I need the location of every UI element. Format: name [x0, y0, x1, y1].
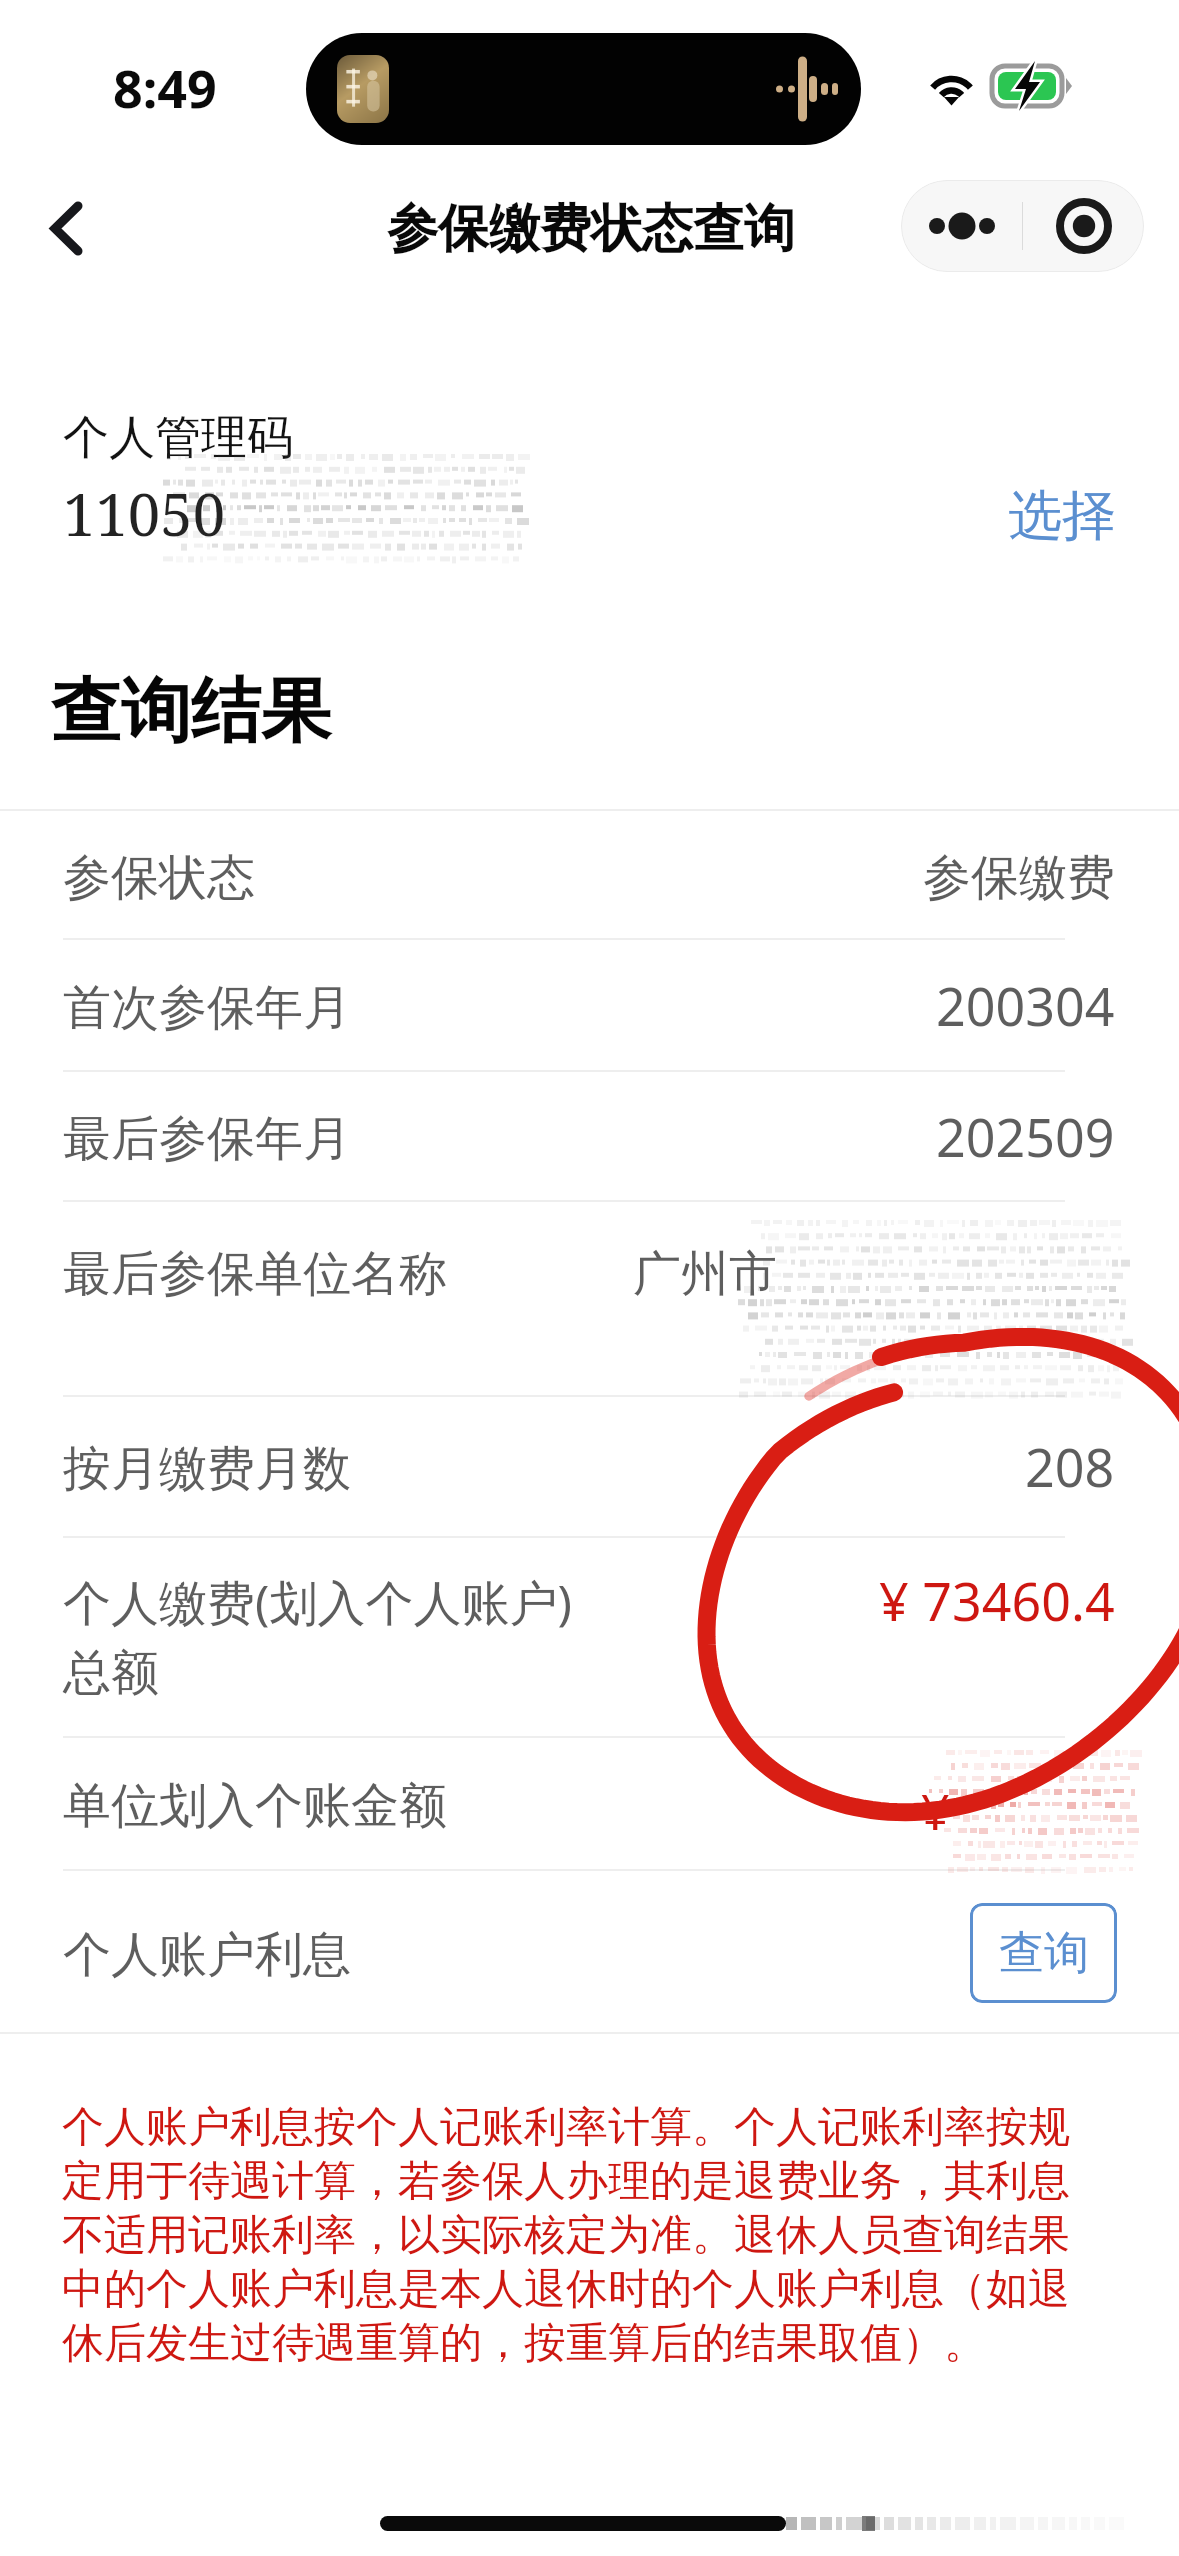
button[interactable]	[0, 1869, 1179, 2033]
staticText: 广州市	[633, 1244, 777, 1304]
staticText: 参保状态	[63, 848, 255, 908]
staticText: 202509	[936, 1101, 1115, 1172]
staticText: 最后参保单位名称	[63, 1244, 447, 1304]
staticText: 208	[1025, 1431, 1115, 1502]
button[interactable]: 查询	[970, 1903, 1117, 2003]
button[interactable]	[0, 1536, 1179, 1736]
staticText: 个人账户利息按个人记账利率计算。个人记账利率按规定用于待遇计算，若参保人办理的是…	[62, 2101, 1084, 2370]
staticText: 首次参保年月	[63, 978, 351, 1038]
staticText: 11050	[63, 474, 226, 553]
staticText: 8:49	[113, 52, 217, 123]
staticText: 单位划入个账金额	[63, 1776, 447, 1836]
staticText: ¥	[921, 1777, 950, 1845]
staticText: 选择	[1008, 482, 1116, 550]
button[interactable]	[0, 1395, 1179, 1536]
staticText: 参保缴费	[923, 848, 1115, 908]
staticText: 参保缴费状态查询	[387, 197, 795, 261]
staticText: 个人账户利息	[63, 1925, 351, 1985]
button[interactable]	[0, 1200, 1179, 1395]
staticText: 200304	[936, 970, 1115, 1041]
button[interactable]: Close mini program	[1023, 180, 1144, 272]
staticText: 个人管理码	[63, 409, 293, 467]
button[interactable]	[0, 938, 1179, 1070]
button[interactable]	[0, 1736, 1179, 1869]
staticText: 最后参保年月	[63, 1109, 351, 1169]
button[interactable]: Back	[15, 180, 117, 276]
staticText: ¥ 73460.4	[879, 1565, 1115, 1636]
button[interactable]: 选择	[987, 474, 1137, 558]
button[interactable]: More options	[901, 180, 1022, 272]
staticText: 查询	[999, 1925, 1089, 1982]
staticText: 按月缴费月数	[63, 1439, 351, 1499]
button[interactable]	[0, 1070, 1179, 1200]
button[interactable]	[0, 810, 1179, 938]
staticText: 查询结果	[51, 668, 331, 756]
staticText: 个人缴费(划入个人账户) 总额	[63, 1569, 572, 1703]
